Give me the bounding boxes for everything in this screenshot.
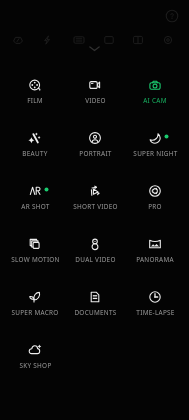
staticText: PANORAMA bbox=[136, 255, 174, 264]
button[interactable]: Collapse mode list bbox=[83, 43, 106, 55]
button[interactable]: AI CAM bbox=[125, 77, 185, 130]
staticText: BEAUTY bbox=[22, 149, 48, 158]
staticText: TIME-LAPSE bbox=[136, 308, 175, 317]
staticText: SKY SHOP bbox=[19, 361, 52, 370]
button[interactable]: Help bbox=[164, 8, 180, 24]
button[interactable]: VIDEO bbox=[65, 77, 125, 130]
staticText: AR SHOT bbox=[21, 202, 50, 211]
staticText: SUPER NIGHT bbox=[133, 149, 178, 158]
button[interactable]: AR SHOT bbox=[5, 183, 65, 236]
staticText: SUPER MACRO bbox=[11, 308, 59, 317]
button[interactable]: PRO bbox=[125, 183, 185, 236]
button[interactable]: PORTRAIT bbox=[65, 130, 125, 183]
button[interactable]: DOCUMENTS bbox=[65, 289, 125, 342]
button[interactable]: SLOW MOTION bbox=[5, 236, 65, 289]
button[interactable]: Aspect ratio bbox=[101, 32, 117, 48]
button[interactable]: Flash off bbox=[10, 32, 26, 48]
button[interactable]: PANORAMA bbox=[125, 236, 185, 289]
button[interactable]: TIME-LAPSE bbox=[125, 289, 185, 342]
button[interactable]: Settings bbox=[160, 32, 176, 48]
button[interactable]: SKY SHOP bbox=[5, 342, 65, 395]
button[interactable]: Filters bbox=[130, 32, 146, 48]
button[interactable]: SHORT VIDEO bbox=[65, 183, 125, 236]
staticText: PORTRAIT bbox=[79, 149, 112, 158]
staticText: VIDEO bbox=[85, 96, 106, 105]
button[interactable]: DUAL VIDEO bbox=[65, 236, 125, 289]
button[interactable]: HDR bbox=[71, 32, 87, 48]
button[interactable]: SUPER MACRO bbox=[5, 289, 65, 342]
staticText: FILM bbox=[27, 96, 43, 105]
staticText: SHORT VIDEO bbox=[73, 202, 118, 211]
staticText: SLOW MOTION bbox=[11, 255, 60, 264]
staticText: DOCUMENTS bbox=[74, 308, 117, 317]
button[interactable]: SUPER NIGHT bbox=[125, 130, 185, 183]
button[interactable]: Flash bbox=[39, 32, 55, 48]
button[interactable]: FILM bbox=[5, 77, 65, 130]
staticText: DUAL VIDEO bbox=[75, 255, 116, 264]
button[interactable]: BEAUTY bbox=[5, 130, 65, 183]
staticText: AI CAM bbox=[143, 96, 167, 105]
staticText: PRO bbox=[148, 202, 162, 211]
